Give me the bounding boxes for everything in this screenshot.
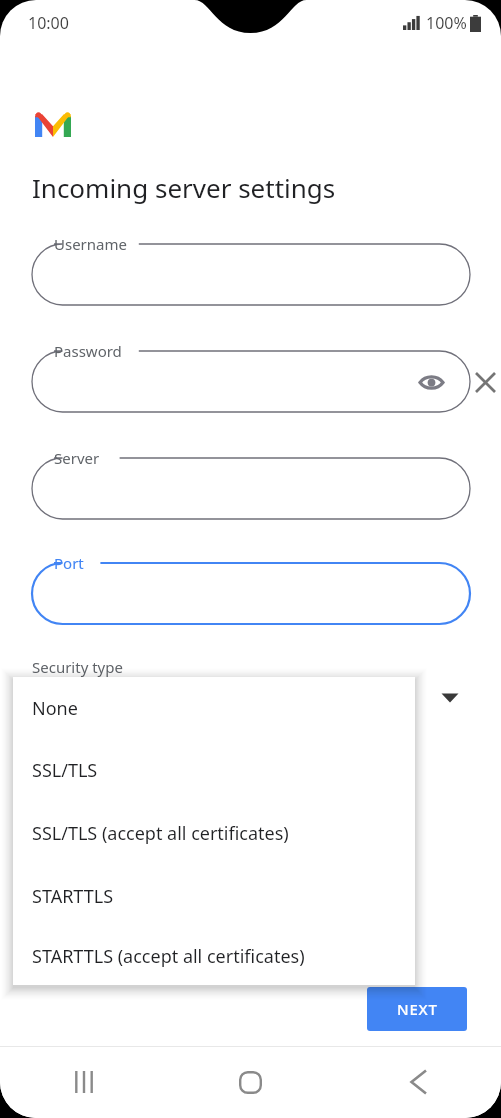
staticText: NEXT: [397, 999, 438, 1019]
staticText: Incoming server settings: [32, 170, 336, 205]
button[interactable]: [32, 244, 470, 305]
staticText: None: [32, 696, 78, 721]
staticText: STARTTLS (accept all certificates): [32, 944, 305, 969]
button[interactable]: Back: [334, 1046, 501, 1118]
staticText: STARTTLS: [32, 884, 114, 909]
button[interactable]: NEXT: [367, 987, 467, 1031]
button[interactable]: Open security type dropdown: [434, 682, 466, 714]
staticText: SSL/TLS: [32, 758, 98, 783]
button[interactable]: Recent apps: [0, 1046, 167, 1118]
button[interactable]: Show password: [32, 351, 470, 412]
staticText: 10:00: [28, 12, 69, 34]
staticText: SSL/TLS (accept all certificates): [32, 821, 289, 846]
staticText: 100%: [426, 12, 467, 34]
staticText: Username: [54, 234, 127, 254]
button[interactable]: Clear password: [468, 365, 501, 399]
button[interactable]: [32, 563, 470, 624]
button[interactable]: SSL/TLS: [13, 739, 415, 802]
button[interactable]: STARTTLS: [13, 865, 415, 928]
button[interactable]: SSL/TLS (accept all certificates): [13, 802, 415, 865]
staticText: Password: [54, 341, 122, 361]
button[interactable]: STARTTLS (accept all certificates): [13, 928, 415, 985]
button[interactable]: None: [13, 677, 415, 739]
button[interactable]: Home: [167, 1046, 334, 1118]
staticText: Server: [54, 448, 100, 468]
staticText: Security type: [32, 657, 123, 677]
button[interactable]: [32, 458, 470, 519]
staticText: Port: [54, 553, 84, 573]
button[interactable]: Show password: [414, 365, 448, 399]
